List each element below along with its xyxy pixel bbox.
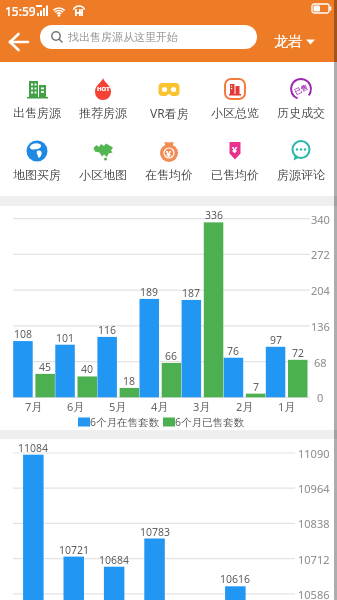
- button[interactable]: 房源评论: [268, 139, 334, 182]
- button[interactable]: 龙岩: [274, 22, 315, 62]
- staticText: 已售: [293, 82, 309, 97]
- staticText: 11084: [18, 441, 49, 455]
- staticText: 10712: [298, 552, 330, 567]
- staticText: 2月: [236, 399, 254, 414]
- staticText: 45: [39, 360, 52, 374]
- staticText: 6个月在售套数: [90, 415, 160, 429]
- staticText: 小区总览: [211, 105, 259, 120]
- button[interactable]: 找出售房源从这里开始: [40, 25, 257, 49]
- staticText: 10783: [140, 525, 171, 539]
- staticText: 5月: [109, 399, 127, 414]
- staticText: 7: [253, 380, 260, 394]
- staticText: 189: [140, 285, 159, 299]
- staticText: 10684: [99, 553, 130, 567]
- staticText: 15:59: [5, 3, 36, 19]
- staticText: ¥: [232, 143, 238, 155]
- staticText: 136: [311, 319, 330, 334]
- staticText: 推荐房源: [79, 105, 127, 120]
- button[interactable]: HOT: [70, 77, 136, 120]
- staticText: 340: [311, 212, 330, 227]
- staticText: 在售均价: [145, 167, 193, 182]
- staticText: 10586: [298, 587, 330, 600]
- staticText: 1月: [278, 399, 296, 414]
- staticText: 116: [98, 323, 117, 337]
- staticText: VR看房: [150, 105, 189, 121]
- staticText: 11090: [298, 446, 330, 461]
- staticText: 97: [270, 333, 283, 347]
- button[interactable]: VR看房: [136, 77, 202, 121]
- staticText: 7月: [25, 399, 43, 414]
- staticText: 18: [123, 374, 136, 388]
- staticText: 108: [14, 327, 33, 341]
- staticText: 187: [182, 286, 201, 300]
- staticText: 小区地图: [79, 167, 127, 182]
- staticText: 0: [317, 390, 324, 405]
- button[interactable]: 小区总览: [202, 77, 268, 120]
- staticText: 101: [56, 331, 75, 345]
- staticText: 72: [292, 346, 305, 360]
- staticText: HOT: [97, 85, 110, 93]
- staticText: 272: [311, 247, 330, 262]
- staticText: 10838: [298, 516, 330, 531]
- staticText: 76: [227, 344, 240, 358]
- staticText: 6月: [67, 399, 85, 414]
- staticText: 已售均价: [211, 167, 259, 182]
- button[interactable]: 小区地图: [70, 139, 136, 182]
- staticText: 地图买房: [13, 167, 61, 182]
- button[interactable]: ¥: [202, 139, 268, 182]
- staticText: 40: [81, 362, 94, 376]
- staticText: 6个月已售套数: [175, 415, 245, 429]
- staticText: 找出售房源从这里开始: [68, 30, 178, 44]
- staticText: 房源评论: [277, 167, 325, 182]
- staticText: 204: [311, 283, 330, 298]
- button[interactable]: 已售: [268, 77, 334, 120]
- staticText: 10964: [298, 481, 330, 496]
- button[interactable]: ¥: [136, 139, 202, 182]
- staticText: 68: [314, 355, 327, 370]
- staticText: 历史成交: [277, 105, 325, 120]
- staticText: 出售房源: [13, 105, 61, 120]
- staticText: 4月: [151, 399, 169, 414]
- staticText: ¥: [166, 147, 172, 159]
- staticText: 10721: [59, 543, 90, 557]
- staticText: 3月: [193, 399, 211, 414]
- staticText: 66: [165, 349, 178, 363]
- button[interactable]: 出售房源: [4, 77, 70, 120]
- staticText: 龙岩: [274, 33, 302, 51]
- button[interactable]: [9, 33, 30, 51]
- staticText: 10616: [220, 572, 251, 586]
- button[interactable]: 地图买房: [4, 139, 70, 182]
- staticText: 336: [205, 208, 224, 222]
